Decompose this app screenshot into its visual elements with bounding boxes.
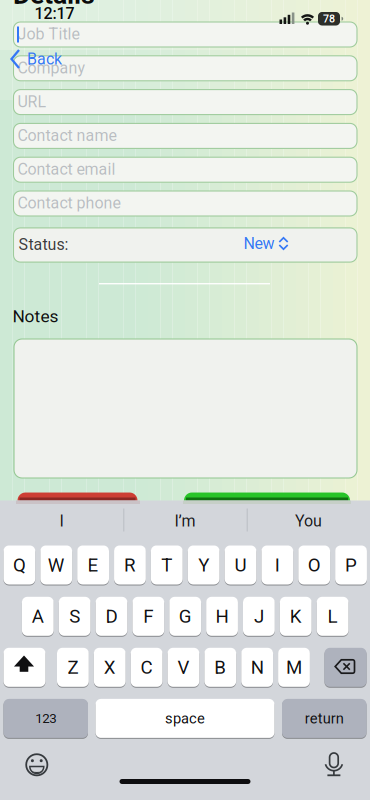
staticText: U bbox=[234, 554, 246, 576]
button[interactable]: S bbox=[59, 596, 91, 636]
staticText: M bbox=[286, 657, 302, 678]
button[interactable] bbox=[184, 492, 350, 508]
staticText: Y bbox=[198, 554, 209, 576]
staticText: E bbox=[88, 554, 99, 576]
staticText: 123 bbox=[35, 711, 56, 726]
button[interactable] bbox=[0, 0, 370, 800]
button[interactable]: N bbox=[241, 647, 273, 687]
button[interactable]: V bbox=[168, 647, 199, 687]
button[interactable]: I’m bbox=[123, 501, 246, 541]
staticText: W bbox=[48, 554, 65, 576]
staticText: P bbox=[345, 554, 357, 576]
staticText: I bbox=[275, 554, 280, 576]
staticText: Notes bbox=[12, 306, 58, 326]
button[interactable]: M bbox=[278, 647, 310, 687]
button[interactable]: P bbox=[335, 545, 367, 585]
staticText: B bbox=[214, 657, 226, 678]
staticText: G bbox=[179, 606, 192, 627]
staticText: J bbox=[254, 606, 264, 627]
staticText: space bbox=[165, 710, 205, 727]
button[interactable]: Contact email bbox=[13, 157, 357, 182]
staticText: K bbox=[290, 606, 302, 627]
staticText: Status: bbox=[18, 235, 68, 254]
staticText: Contact name bbox=[17, 126, 116, 145]
button[interactable]: J bbox=[243, 596, 275, 636]
staticText: D bbox=[105, 606, 117, 627]
button[interactable]: Q bbox=[3, 545, 35, 585]
button[interactable]: Job Title bbox=[13, 22, 357, 47]
button[interactable] bbox=[0, 0, 370, 800]
button[interactable] bbox=[14, 339, 357, 478]
staticText: X bbox=[104, 657, 116, 678]
staticText: V bbox=[177, 657, 189, 678]
button[interactable]: D bbox=[96, 596, 127, 636]
staticText: 78 bbox=[323, 13, 335, 25]
button[interactable]: URL bbox=[13, 90, 357, 115]
button[interactable] bbox=[17, 492, 137, 508]
staticText: F bbox=[143, 606, 153, 627]
button[interactable]: You bbox=[247, 501, 370, 541]
button[interactable]: O bbox=[298, 545, 330, 585]
staticText: O bbox=[308, 554, 321, 576]
button[interactable]: Company bbox=[13, 56, 357, 81]
staticText: L bbox=[328, 606, 338, 627]
staticText: New bbox=[243, 234, 274, 253]
button[interactable]: Z bbox=[57, 647, 89, 687]
staticText: 12:17 bbox=[34, 4, 74, 23]
button[interactable]: Contact phone bbox=[13, 191, 357, 216]
staticText: Back bbox=[27, 50, 62, 68]
staticText: R bbox=[124, 554, 136, 576]
button[interactable]: H bbox=[206, 596, 238, 636]
staticText: Job Title bbox=[17, 25, 79, 43]
button[interactable]: Back bbox=[10, 47, 100, 71]
button[interactable]: return bbox=[282, 698, 366, 738]
staticText: URL bbox=[17, 93, 46, 111]
staticText: Contact phone bbox=[17, 194, 120, 212]
staticText: N bbox=[251, 657, 264, 678]
staticText: Z bbox=[67, 657, 78, 678]
staticText: T bbox=[161, 554, 172, 576]
staticText: return bbox=[305, 710, 344, 727]
button[interactable]: G bbox=[169, 596, 201, 636]
button[interactable]: Contact name bbox=[13, 123, 357, 148]
button[interactable]: W bbox=[40, 545, 72, 585]
button[interactable] bbox=[324, 647, 366, 687]
staticText: S bbox=[69, 606, 80, 627]
button[interactable]: E bbox=[77, 545, 109, 585]
staticText: A bbox=[32, 606, 44, 627]
button[interactable]: U bbox=[225, 545, 256, 585]
button[interactable]: K bbox=[280, 596, 312, 636]
button[interactable]: New bbox=[243, 231, 288, 255]
button[interactable]: space bbox=[95, 698, 274, 738]
button[interactable]: Y bbox=[188, 545, 220, 585]
staticText: Contact email bbox=[17, 160, 115, 178]
button[interactable]: B bbox=[204, 647, 236, 687]
button[interactable] bbox=[3, 647, 45, 687]
button[interactable]: I bbox=[0, 501, 123, 541]
button[interactable]: T bbox=[151, 545, 183, 585]
staticText: Details bbox=[13, 0, 95, 10]
button[interactable]: R bbox=[114, 545, 146, 585]
staticText: Company bbox=[17, 59, 85, 77]
button[interactable]: I bbox=[261, 545, 293, 585]
staticText: I’m bbox=[174, 512, 195, 530]
button[interactable]: 123 bbox=[3, 698, 88, 738]
button[interactable]: X bbox=[94, 647, 126, 687]
button[interactable]: C bbox=[131, 647, 162, 687]
staticText: I bbox=[59, 512, 63, 530]
button[interactable]: A bbox=[22, 596, 54, 636]
button[interactable]: F bbox=[132, 596, 164, 636]
staticText: H bbox=[216, 606, 229, 627]
staticText: You bbox=[295, 512, 322, 530]
staticText: Q bbox=[13, 554, 26, 576]
button[interactable]: L bbox=[317, 596, 348, 636]
staticText: C bbox=[141, 657, 153, 678]
